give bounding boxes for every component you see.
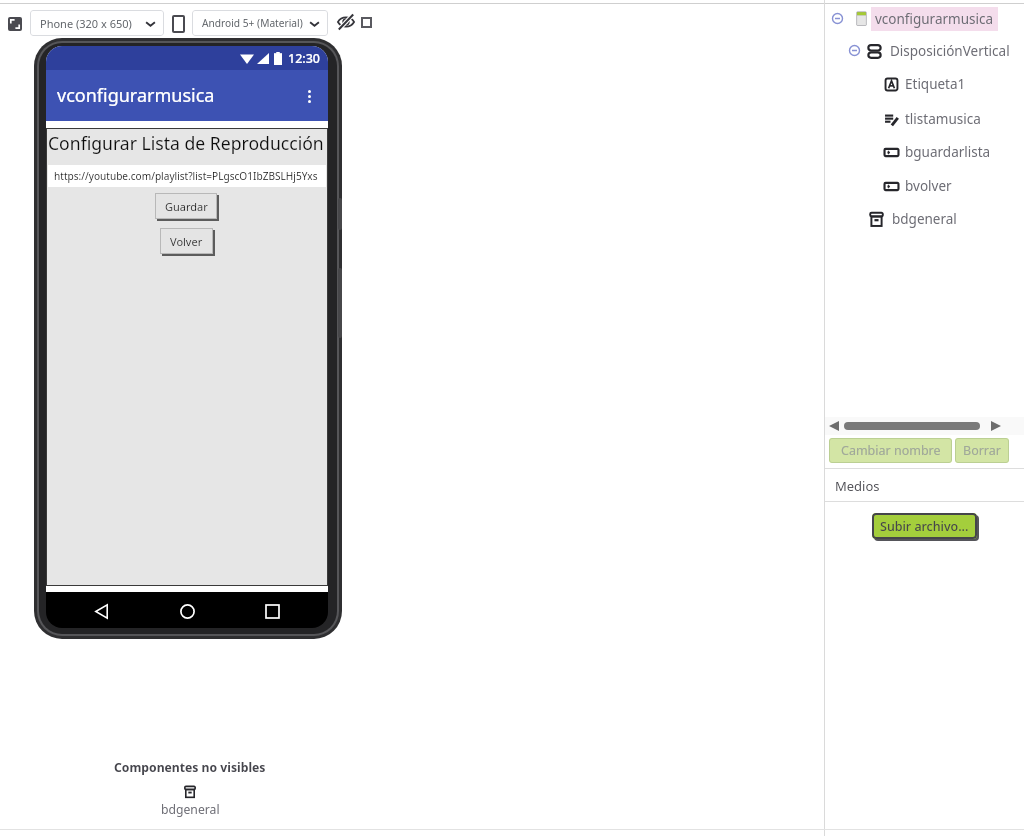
staticText: bvolver (905, 177, 952, 195)
staticText: Etiqueta1 (905, 75, 966, 93)
staticText: bguardarlista (905, 143, 991, 161)
button[interactable]: Resize preview (8, 17, 22, 31)
button[interactable]: Checkbox (361, 17, 372, 28)
button[interactable]: DisposiciónVertical (862, 38, 1014, 64)
button[interactable]: Home (175, 599, 199, 623)
button[interactable]: Android 5+ (Material) (202, 10, 320, 36)
button[interactable]: Hide hidden components (337, 13, 355, 31)
button[interactable]: https://youtube.com/playlist?list=PLgscO… (48, 165, 326, 187)
staticText: Borrar (963, 442, 1001, 459)
staticText: Cambiar nombre (841, 442, 941, 459)
button[interactable]: Phone (320 x 650) (40, 10, 156, 36)
button[interactable]: Cambiar nombre (829, 438, 952, 463)
button[interactable]: Back (89, 599, 113, 623)
staticText: tlistamusica (905, 110, 981, 128)
button[interactable]: Collapse (832, 13, 843, 24)
staticText: vconfigurarmusica (57, 83, 215, 108)
button[interactable]: Borrar (955, 438, 1009, 463)
staticText: DisposiciónVertical (890, 42, 1010, 60)
staticText: Componentes no visibles (114, 759, 266, 776)
button[interactable]: Guardar (155, 193, 217, 219)
button[interactable]: Collapse (849, 45, 860, 56)
staticText: 12:30 (288, 50, 321, 67)
staticText: Subir archivo... (880, 518, 969, 535)
button[interactable]: bdgeneral component (183, 785, 197, 799)
staticText: Phone (320 x 650) (40, 16, 145, 31)
staticText: https://youtube.com/playlist?list=PLgscO… (54, 169, 318, 183)
staticText: vconfigurarmusica (875, 10, 994, 28)
staticText: bdgeneral (892, 210, 957, 228)
button[interactable]: bguardarlista (879, 139, 995, 165)
button[interactable]: More options (297, 84, 321, 108)
button[interactable]: Volver (160, 228, 213, 254)
button[interactable]: Recent apps (260, 599, 284, 623)
button[interactable]: Subir archivo... (872, 513, 977, 539)
button[interactable] (844, 422, 980, 430)
staticText: Android 5+ (Material) (202, 16, 309, 30)
button[interactable]: tlistamusica (879, 106, 985, 132)
staticText: Volver (170, 234, 203, 249)
staticText: Configurar Lista de Reproducción (48, 131, 324, 155)
button[interactable]: Etiqueta1 (879, 71, 970, 97)
staticText: Guardar (165, 199, 208, 214)
button[interactable]: vconfigurarmusica (849, 6, 998, 32)
staticText: Medios (835, 477, 880, 495)
button[interactable]: Scroll left (829, 421, 839, 431)
button[interactable]: bdgeneral (864, 206, 961, 232)
staticText: bdgeneral (161, 801, 220, 818)
button[interactable]: Scroll right (991, 421, 1001, 431)
button[interactable]: bvolver (879, 173, 956, 199)
